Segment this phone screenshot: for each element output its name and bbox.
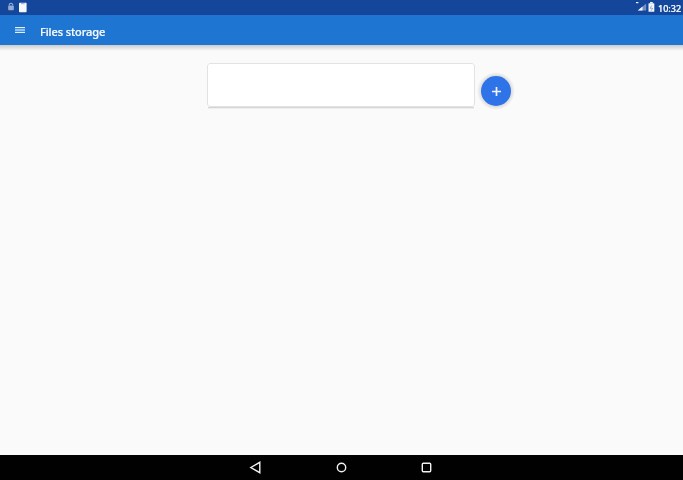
button[interactable] bbox=[207, 63, 475, 107]
button[interactable] bbox=[415, 456, 438, 479]
button[interactable] bbox=[9, 19, 31, 41]
button[interactable] bbox=[244, 456, 267, 479]
button[interactable] bbox=[330, 456, 353, 479]
staticText: Files storage bbox=[40, 24, 106, 39]
staticText: 10:32 bbox=[658, 2, 682, 14]
button[interactable] bbox=[481, 76, 511, 106]
